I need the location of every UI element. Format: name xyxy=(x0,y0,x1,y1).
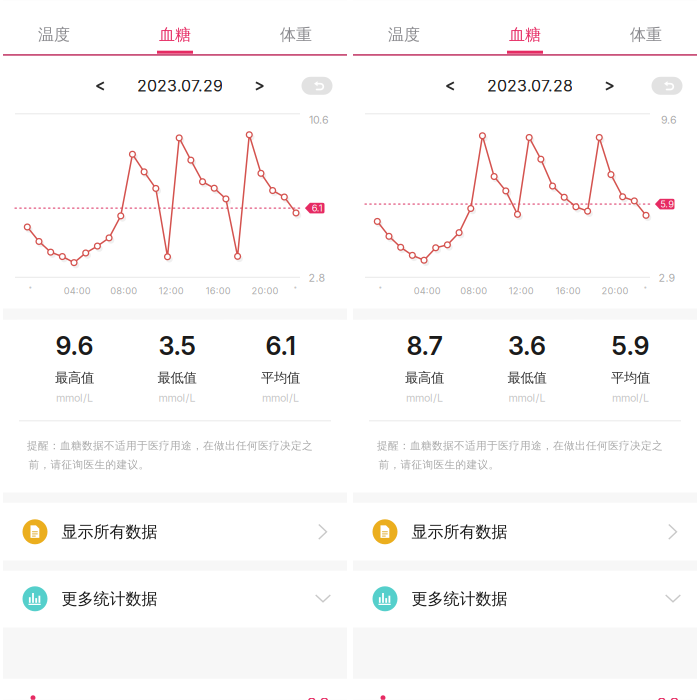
staticText: 04:00 xyxy=(414,285,441,296)
button[interactable]: 显示所有数据 xyxy=(3,503,347,561)
staticText: 12:00 xyxy=(509,285,534,296)
button[interactable]: Previous day xyxy=(433,68,467,104)
staticText: 2023.07.28 xyxy=(487,76,573,95)
staticText: 5.9 xyxy=(660,198,674,210)
staticText: 3.6 xyxy=(508,330,546,361)
staticText: · xyxy=(28,278,33,297)
button[interactable]: 温度 xyxy=(0,9,111,60)
staticText: 10.6 xyxy=(309,113,329,126)
staticText: mmol/L xyxy=(406,391,443,404)
staticText: · xyxy=(378,278,383,297)
staticText: 2.8 xyxy=(308,271,325,284)
staticText: 最低值 xyxy=(507,369,546,386)
staticText: 平均值 xyxy=(611,369,650,386)
button[interactable]: Next day xyxy=(592,68,626,104)
staticText: 更多统计数据 xyxy=(411,589,507,609)
staticText: 12:00 xyxy=(159,285,184,296)
staticText: 04:00 xyxy=(64,285,91,296)
staticText: 平均值 xyxy=(261,369,300,386)
staticText: 6.3 xyxy=(306,694,329,700)
staticText: 血糖 xyxy=(509,25,541,45)
staticText: 更多统计数据 xyxy=(61,589,157,609)
button[interactable]: 更多统计数据 xyxy=(353,571,697,628)
staticText: mmol/L xyxy=(508,391,545,404)
staticText: 3.5 xyxy=(158,330,195,361)
staticText: 体重 xyxy=(630,25,662,45)
staticText: 最高值 xyxy=(405,369,444,386)
staticText: 16:00 xyxy=(556,285,581,296)
button[interactable]: 体重 xyxy=(589,9,700,60)
staticText: mmol/L xyxy=(158,391,195,404)
staticText: mmol/L xyxy=(612,391,649,404)
staticText: 8.7 xyxy=(406,330,442,361)
staticText: 6.1 xyxy=(312,202,323,214)
button[interactable]: Reset chart xyxy=(651,77,682,95)
staticText: 提醒：血糖数据不适用于医疗用途，在做出任何医疗决定之 xyxy=(377,439,663,452)
staticText: mmol/L xyxy=(56,391,93,404)
staticText: 温度 xyxy=(38,25,70,45)
staticText: 5.9 xyxy=(611,330,649,361)
staticText: 显示所有数据 xyxy=(411,522,507,542)
button[interactable]: 温度 xyxy=(347,9,461,60)
staticText: 最高值 xyxy=(55,369,94,386)
staticText: 显示所有数据 xyxy=(61,522,157,542)
staticText: 温度 xyxy=(388,25,420,45)
staticText: 20:00 xyxy=(601,285,628,296)
staticText: 6.1 xyxy=(265,330,295,361)
staticText: 08:00 xyxy=(110,285,137,296)
button[interactable]: Reset chart xyxy=(301,77,332,95)
staticText: 2023.07.29 xyxy=(137,76,223,95)
button[interactable]: 显示所有数据 xyxy=(353,503,697,561)
staticText: 前，请征询医生的建议。 xyxy=(378,458,499,471)
staticText: 20:00 xyxy=(251,285,278,296)
staticText: · xyxy=(293,278,298,297)
button[interactable]: 血糖 xyxy=(468,9,582,60)
staticText: 6.3 xyxy=(656,694,679,700)
button[interactable]: 体重 xyxy=(239,9,353,60)
button[interactable]: Previous day xyxy=(83,68,117,104)
staticText: 提醒：血糖数据不适用于医疗用途，在做出任何医疗决定之 xyxy=(27,439,313,452)
button[interactable]: 血糖 xyxy=(118,9,232,60)
staticText: 9.6 xyxy=(661,113,677,126)
staticText: 08:00 xyxy=(460,285,487,296)
button[interactable]: Next day xyxy=(242,68,276,104)
staticText: 最低值 xyxy=(157,369,196,386)
staticText: 体重 xyxy=(280,25,312,45)
staticText: 16:00 xyxy=(206,285,231,296)
staticText: 9.6 xyxy=(55,330,93,361)
staticText: mmol/L xyxy=(262,391,299,404)
staticText: · xyxy=(643,278,648,297)
staticText: 血糖 xyxy=(159,25,191,45)
button[interactable]: 更多统计数据 xyxy=(3,571,347,628)
staticText: 前，请征询医生的建议。 xyxy=(28,458,149,471)
staticText: 2.9 xyxy=(658,271,675,284)
